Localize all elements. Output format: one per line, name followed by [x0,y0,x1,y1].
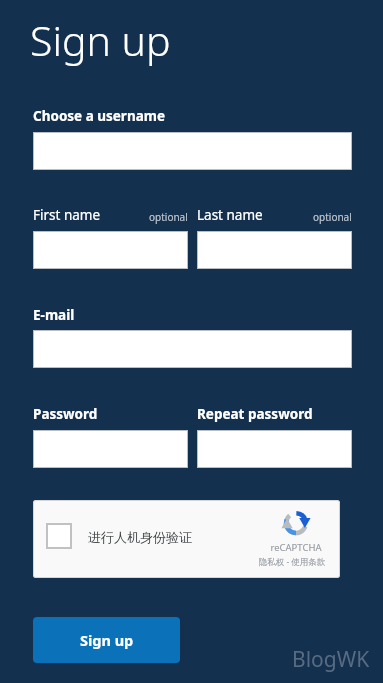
staticText: reCAPTCHA [266,541,326,554]
staticText: 进行人机身份验证 [88,529,192,545]
staticText: Choose a username [33,107,165,125]
button[interactable] [197,430,352,468]
staticText: First name [33,206,101,224]
button[interactable] [33,330,352,368]
button[interactable]: Sign up [33,617,180,663]
button[interactable] [33,132,352,170]
staticText: E-mail [33,306,75,324]
other: reCAPTCHA logo [276,505,316,538]
staticText: BlogWK [292,645,370,674]
staticText: optional [313,210,352,224]
button[interactable]: I am not a robot checkbox [46,523,72,549]
button[interactable] [33,430,188,468]
staticText: optional [149,210,188,224]
button[interactable] [33,231,188,269]
staticText: Sign up [30,12,171,68]
staticText: 隐私权 - 使用条款 [253,556,331,568]
staticText: Last name [197,206,263,224]
button[interactable]: I am not a robot checkbox [33,500,340,578]
staticText: Repeat password [197,405,313,423]
button[interactable] [197,231,352,269]
staticText: Password [33,405,98,423]
staticText: Sign up [80,630,134,650]
